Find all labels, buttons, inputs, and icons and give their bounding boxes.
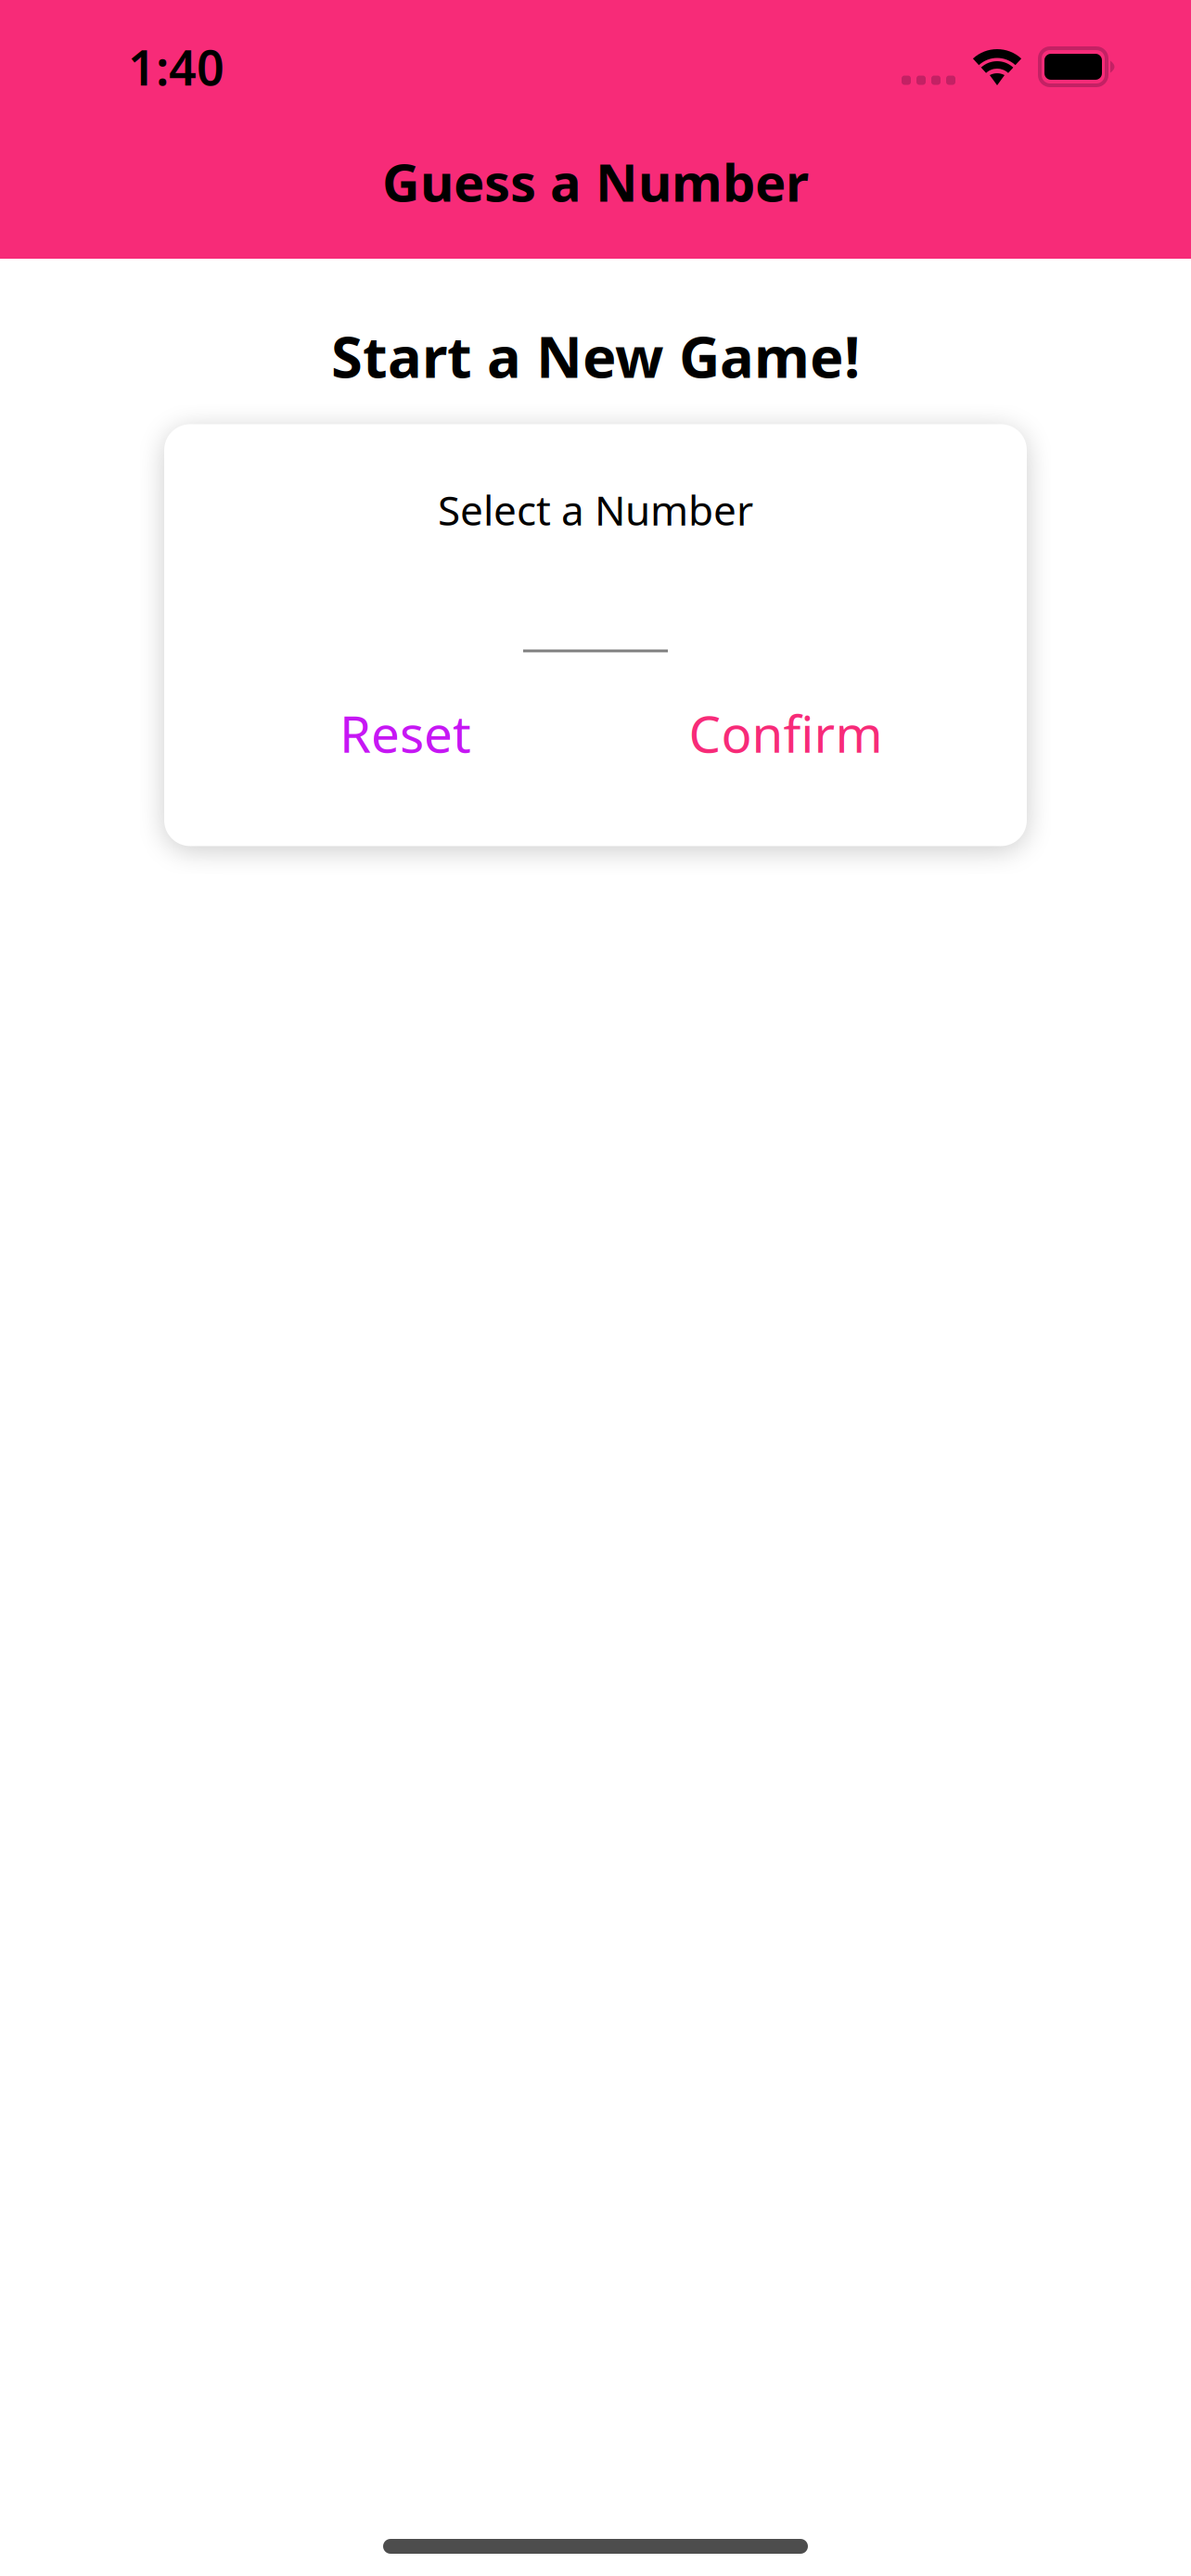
button[interactable]: Reset — [219, 692, 592, 774]
staticText: Reset — [339, 699, 471, 767]
staticText: Guess a Number — [382, 147, 809, 216]
staticText: Start a New Game! — [331, 318, 860, 394]
staticText: Confirm — [689, 699, 883, 767]
staticText: 1:40 — [128, 35, 224, 99]
staticText: Select a Number — [438, 483, 753, 537]
button[interactable]: Confirm — [599, 692, 972, 774]
